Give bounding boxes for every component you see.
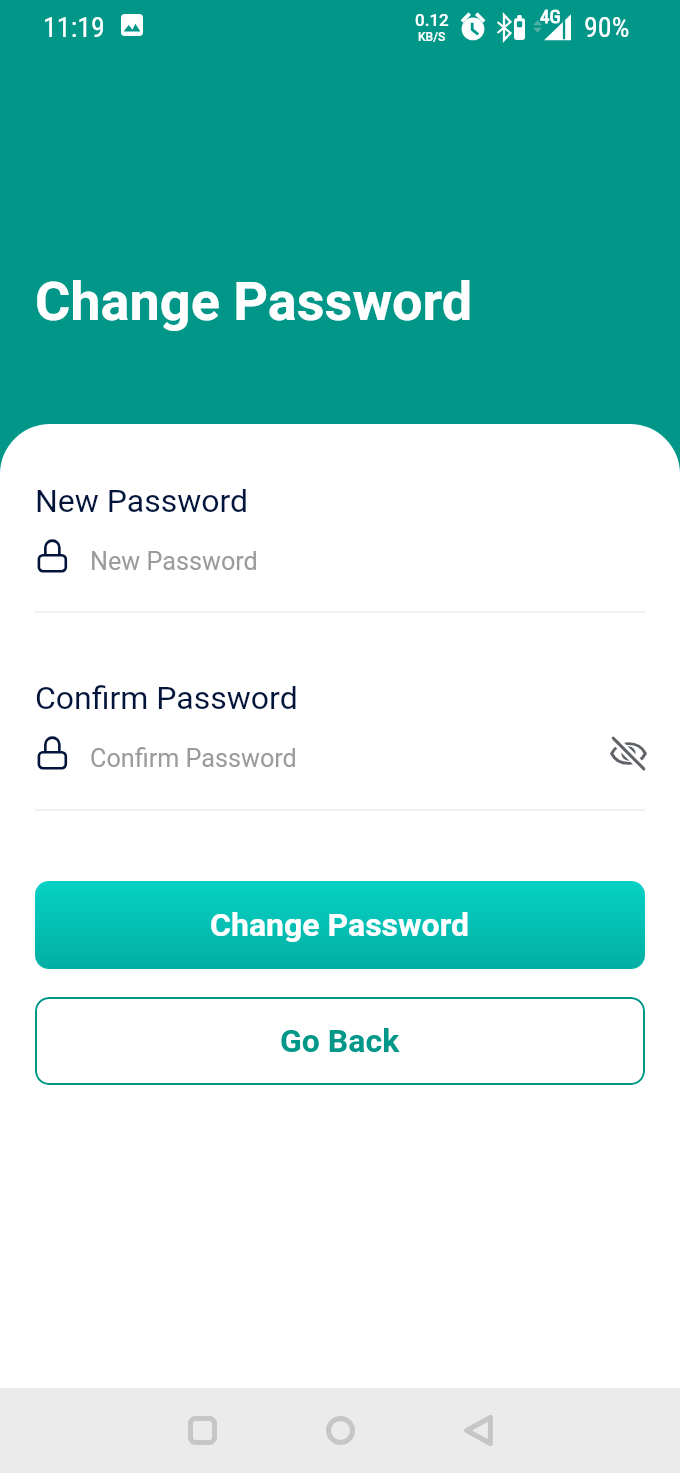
staticText: Go Back bbox=[280, 1022, 400, 1060]
button[interactable]: Recent apps bbox=[160, 1388, 245, 1473]
staticText: Confirm Password bbox=[90, 744, 297, 774]
staticText: 4G bbox=[540, 5, 561, 27]
staticText: 0.12 bbox=[415, 10, 449, 30]
staticText: KB/S bbox=[418, 30, 446, 44]
button[interactable]: Back bbox=[436, 1388, 521, 1473]
staticText: Change Password bbox=[210, 906, 470, 944]
staticText: Confirm Password bbox=[35, 679, 298, 717]
staticText: New Password bbox=[90, 547, 258, 577]
staticText: 90% bbox=[584, 11, 630, 44]
button[interactable]: Change Password bbox=[35, 881, 645, 969]
button[interactable]: Show password bbox=[606, 731, 650, 775]
button[interactable]: Home bbox=[298, 1388, 383, 1473]
button[interactable]: Go Back bbox=[35, 997, 645, 1085]
staticText: 11:19 bbox=[43, 11, 105, 44]
staticText: New Password bbox=[35, 482, 249, 520]
staticText: Change Password bbox=[35, 270, 473, 333]
